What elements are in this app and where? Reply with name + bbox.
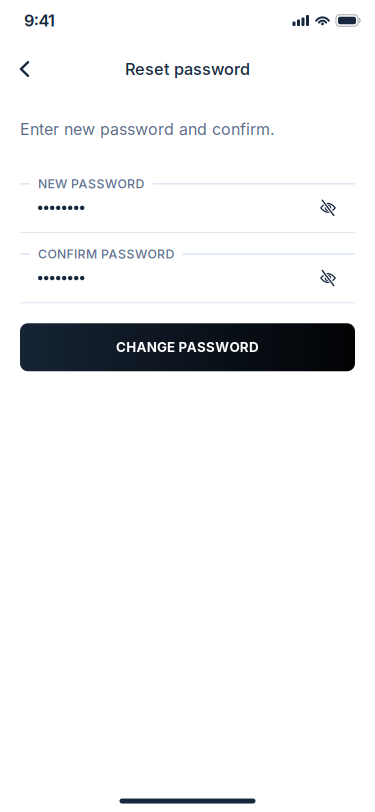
staticText: 9:41 — [24, 11, 55, 30]
button[interactable]: Show password — [316, 266, 340, 290]
staticText: CONFIRM PASSWORD — [38, 247, 174, 261]
staticText: Enter new password and confirm. — [20, 119, 275, 139]
staticText: CHANGE PASSWORD — [116, 339, 259, 355]
button[interactable]: CHANGE PASSWORD — [20, 323, 355, 371]
button[interactable]: Show password — [316, 196, 340, 220]
button[interactable]: Back — [0, 47, 45, 91]
staticText: NEW PASSWORD — [38, 176, 144, 191]
staticText: Reset password — [125, 59, 250, 79]
